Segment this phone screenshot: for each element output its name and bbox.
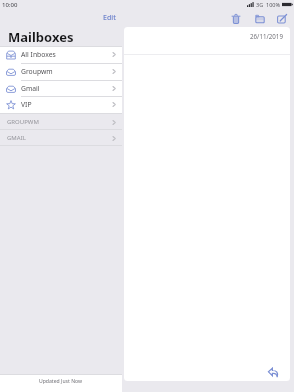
button[interactable]: Groupwm xyxy=(0,63,122,80)
staticText: 26/11/2019 xyxy=(250,32,283,40)
staticText: Groupwm xyxy=(21,67,53,76)
staticText: VIP xyxy=(21,100,32,109)
staticText: 100% xyxy=(266,1,281,8)
staticText: Gmail xyxy=(21,84,40,93)
button[interactable]: All Inboxes xyxy=(0,46,122,63)
staticText: Edit xyxy=(103,13,116,23)
staticText: All Inboxes xyxy=(21,50,56,59)
button[interactable]: GROUPWM xyxy=(0,114,122,130)
staticText: GMAIL xyxy=(7,134,26,142)
button[interactable]: Edit xyxy=(100,11,119,25)
button[interactable]: Compose xyxy=(274,11,290,27)
button[interactable]: Reply xyxy=(265,364,281,380)
button[interactable]: Move to folder xyxy=(252,11,268,27)
staticText: 3G xyxy=(256,1,264,8)
button[interactable]: GMAIL xyxy=(0,130,122,146)
button[interactable]: Gmail xyxy=(0,80,122,97)
staticText: 10:00 xyxy=(2,1,18,9)
staticText: GROUPWM xyxy=(7,118,39,126)
staticText: Updated Just Now xyxy=(39,378,83,385)
button[interactable]: VIP xyxy=(0,96,122,113)
staticText: Mailboxes xyxy=(8,28,74,46)
button[interactable]: Delete xyxy=(228,11,244,27)
